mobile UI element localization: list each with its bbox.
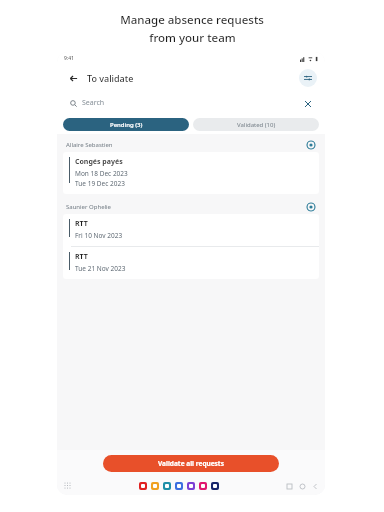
button[interactable]: Congés payés: [63, 152, 319, 194]
staticText: RTT: [75, 252, 88, 262]
staticText: To validate: [87, 72, 134, 84]
button[interactable]: App 3: [175, 482, 183, 490]
staticText: from your team: [149, 30, 236, 46]
staticText: RTT: [75, 219, 88, 229]
staticText: Mon 18 Dec 2023: [75, 169, 128, 178]
staticText: Congés payés: [75, 157, 123, 167]
staticText: Allaire Sebastien: [66, 141, 113, 149]
button[interactable]: App 0: [139, 482, 147, 490]
staticText: Tue 21 Nov 2023: [75, 264, 126, 273]
button[interactable]: All apps: [63, 481, 73, 491]
button[interactable]: Recents: [286, 483, 293, 490]
button[interactable]: RTT: [63, 214, 319, 246]
staticText: Validated (10): [237, 121, 276, 129]
staticText: Pending (3): [110, 121, 143, 129]
button[interactable]: Validate all requests: [103, 455, 279, 472]
button[interactable]: App 2: [163, 482, 171, 490]
button[interactable]: Pending (3): [63, 118, 189, 131]
button[interactable]: Back: [312, 483, 319, 490]
button[interactable]: Employee profile: [306, 140, 316, 150]
staticText: Saunier Ophelie: [66, 203, 111, 211]
button[interactable]: App 5: [199, 482, 207, 490]
button[interactable]: App 4: [187, 482, 195, 490]
button[interactable]: RTT: [63, 247, 319, 279]
staticText: 9:41: [64, 55, 74, 62]
button[interactable]: Employee profile: [306, 202, 316, 212]
button[interactable]: App 1: [151, 482, 159, 490]
button[interactable]: App 6: [211, 482, 219, 490]
button[interactable]: Clear search: [303, 99, 312, 108]
button[interactable]: Home: [299, 483, 306, 490]
staticText: Fri 10 Nov 2023: [75, 231, 123, 240]
button[interactable]: Back: [65, 70, 81, 86]
button[interactable]: Search: [64, 94, 318, 112]
staticText: Validate all requests: [158, 459, 224, 468]
staticText: Manage absence requests: [120, 12, 264, 28]
staticText: Search: [82, 98, 105, 108]
staticText: Tue 19 Dec 2023: [75, 179, 125, 188]
button[interactable]: Filter: [299, 69, 317, 87]
button[interactable]: Validated (10): [193, 118, 319, 131]
